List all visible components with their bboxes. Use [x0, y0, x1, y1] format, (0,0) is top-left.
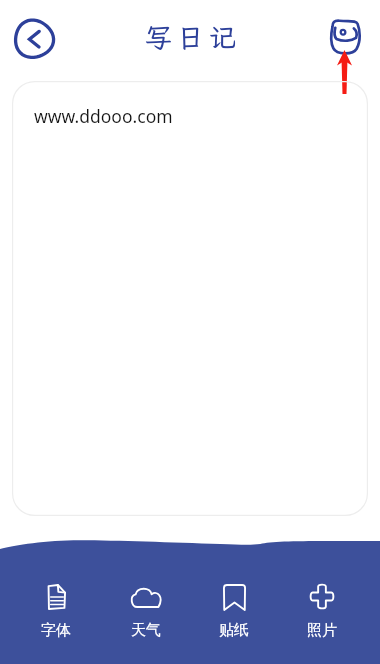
button[interactable]: www.ddooo.com	[12, 81, 368, 516]
button[interactable]: 天气	[111, 584, 181, 640]
staticText: 天气	[131, 621, 161, 640]
staticText: 贴纸	[219, 621, 249, 640]
button[interactable]: 贴纸	[199, 584, 269, 640]
button[interactable]: 照片	[287, 584, 357, 640]
staticText: 字体	[41, 621, 71, 640]
staticText: 照片	[307, 621, 337, 640]
button[interactable]: Back	[10, 15, 58, 63]
staticText: www.ddooo.com	[34, 104, 173, 128]
staticText: 写日记	[145, 19, 241, 55]
button[interactable]: Save	[330, 19, 361, 54]
button[interactable]: 字体	[21, 584, 91, 640]
